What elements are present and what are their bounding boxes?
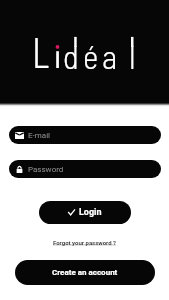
- staticText: L: [32, 25, 49, 77]
- staticText: a: [102, 36, 118, 76]
- staticText: l: [129, 36, 136, 76]
- staticText: Login: [79, 207, 102, 218]
- button[interactable]: E-mail: [9, 126, 161, 144]
- button[interactable]: Create an account: [15, 260, 155, 285]
- other: Password: [15, 166, 24, 173]
- button[interactable]: Forgot your password ?: [47, 236, 123, 249]
- staticText: Forgot your password ?: [53, 239, 117, 246]
- button[interactable]: Login: [39, 201, 131, 224]
- button[interactable]: Password: [9, 160, 161, 178]
- staticText: E-mail: [28, 131, 51, 140]
- staticText: Password: [28, 165, 64, 174]
- staticText: é: [83, 36, 99, 76]
- other: E-mail: [15, 132, 24, 139]
- staticText: d: [63, 36, 79, 76]
- staticText: Create an account: [52, 268, 118, 277]
